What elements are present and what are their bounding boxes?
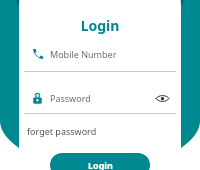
button[interactable]: Password	[32, 92, 155, 104]
button[interactable]: forget password	[27, 124, 97, 138]
button[interactable]: Show password	[155, 91, 169, 105]
button[interactable]: Login	[50, 153, 150, 170]
button[interactable]: Mobile Number	[32, 45, 176, 62]
staticText: Login	[88, 159, 113, 170]
staticText: Mobile Number	[50, 48, 117, 60]
staticText: Password	[50, 92, 91, 104]
staticText: Login	[0, 16, 200, 35]
